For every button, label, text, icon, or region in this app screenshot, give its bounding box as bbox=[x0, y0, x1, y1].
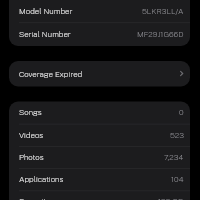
button[interactable]: Applications bbox=[9, 167, 190, 189]
staticText: Applications bbox=[19, 174, 64, 183]
button[interactable]: Serial Number bbox=[9, 22, 190, 45]
staticText: Photos bbox=[19, 152, 44, 161]
button[interactable]: Songs bbox=[9, 100, 190, 122]
staticText: 7,234 bbox=[164, 152, 184, 161]
staticText: MF29J1G66D bbox=[137, 29, 184, 38]
staticText: Songs bbox=[19, 107, 42, 116]
staticText: Model Number bbox=[19, 6, 73, 15]
other: Coverage details bbox=[179, 69, 184, 78]
button[interactable]: Photos bbox=[9, 145, 190, 167]
staticText: 523 bbox=[170, 130, 184, 139]
staticText: 5LKR3LL/A bbox=[142, 6, 184, 15]
button[interactable]: Model Number bbox=[9, 0, 190, 21]
staticText: Capacity bbox=[19, 196, 51, 200]
staticText: Serial Number bbox=[19, 29, 71, 38]
button[interactable]: Coverage Expired bbox=[9, 60, 190, 86]
staticText: Videos bbox=[19, 130, 44, 139]
staticText: 0 bbox=[179, 107, 184, 116]
button[interactable]: Capacity bbox=[9, 189, 190, 200]
staticText: Coverage Expired bbox=[19, 69, 83, 78]
staticText: 128 GB bbox=[158, 196, 184, 200]
button[interactable]: Videos bbox=[9, 123, 190, 145]
staticText: 104 bbox=[171, 174, 184, 183]
